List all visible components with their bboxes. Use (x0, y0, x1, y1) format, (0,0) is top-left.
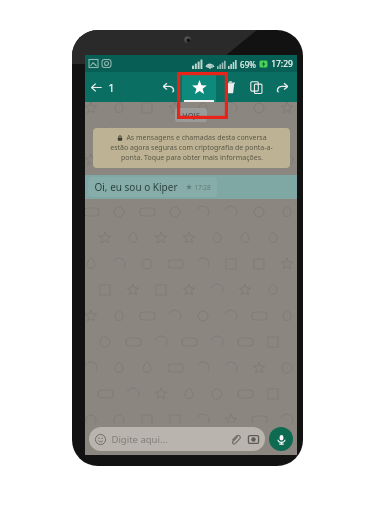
staticText: 1 (108, 80, 115, 95)
other: Camera (248, 434, 259, 445)
staticText: 17:28 (194, 183, 211, 192)
button[interactable]: Reply (158, 72, 178, 102)
staticText: Digite aqui... (111, 433, 168, 446)
other: Attach (230, 434, 241, 445)
staticText: 69% (240, 59, 256, 70)
button[interactable]: Voice message (269, 427, 293, 451)
button[interactable]: Delete (220, 72, 240, 102)
button[interactable]: Back (85, 72, 120, 102)
button[interactable]: Oi, eu sou o Kiper (85, 175, 297, 199)
staticText: HOJE (182, 110, 200, 120)
button[interactable]: Forward (272, 72, 292, 102)
button[interactable]: Star (182, 72, 216, 102)
staticText: ponta. Toque para obter mais informações… (121, 153, 263, 163)
staticText: estão agora seguras com criptografia de … (110, 143, 273, 153)
staticText: As mensagens e chamadas desta conversa (126, 133, 267, 143)
staticText: Oi, eu sou o Kiper (94, 180, 178, 194)
button[interactable]: Copy (246, 72, 266, 102)
staticText: 17:29 (271, 58, 293, 70)
button[interactable]: Digite aqui... (89, 427, 265, 451)
